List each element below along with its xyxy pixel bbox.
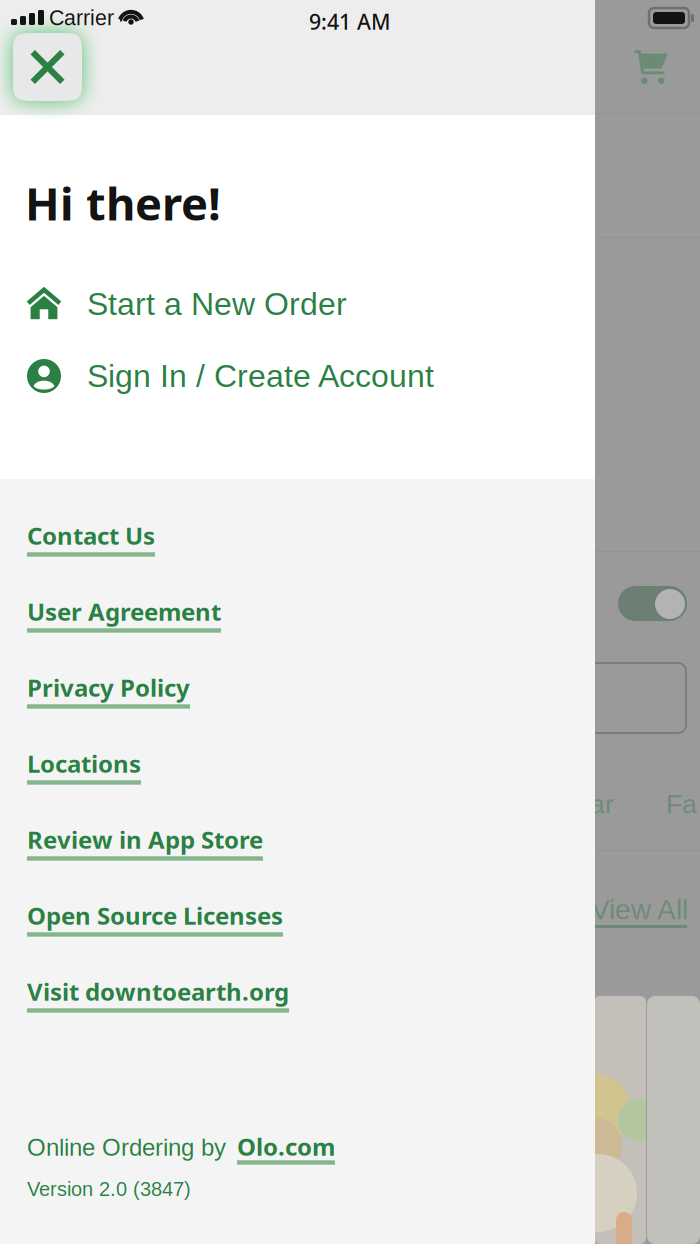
staticText: Version 2.0 (3847) (27, 1178, 191, 1200)
button[interactable]: Contact Us (27, 519, 155, 595)
button[interactable]: User Agreement (27, 595, 221, 671)
staticText: Carrier (49, 6, 114, 30)
button[interactable]: Start a New Order (27, 282, 347, 326)
button[interactable]: Visit downtoearth.org (27, 975, 289, 1051)
button[interactable]: Review in App Store (27, 823, 263, 899)
staticText: ar (590, 789, 614, 819)
staticText: Fa (666, 789, 697, 819)
staticText: Review in App Store (27, 823, 263, 856)
staticText: Visit downtoearth.org (27, 975, 289, 1008)
staticText: Open Source Licenses (27, 899, 283, 932)
staticText: Olo.com (237, 1130, 335, 1163)
staticText: View All (591, 894, 688, 925)
staticText: Contact Us (27, 519, 155, 552)
button[interactable]: Sign In / Create Account (27, 354, 434, 398)
staticText: Locations (27, 747, 141, 780)
button[interactable]: Open Source Licenses (27, 899, 283, 975)
staticText: Privacy Policy (27, 671, 190, 704)
staticText: Online Ordering by (27, 1134, 226, 1161)
staticText: 9:41 AM (309, 7, 391, 36)
staticText: Hi there! (25, 172, 221, 234)
staticText: User Agreement (27, 595, 221, 628)
button[interactable]: Olo.com (237, 1130, 335, 1165)
staticText: Start a New Order (87, 286, 347, 322)
button[interactable]: Locations (27, 747, 141, 823)
button[interactable]: Close menu (13, 33, 82, 101)
button[interactable]: Privacy Policy (27, 671, 190, 747)
staticText: Sign In / Create Account (87, 358, 434, 394)
